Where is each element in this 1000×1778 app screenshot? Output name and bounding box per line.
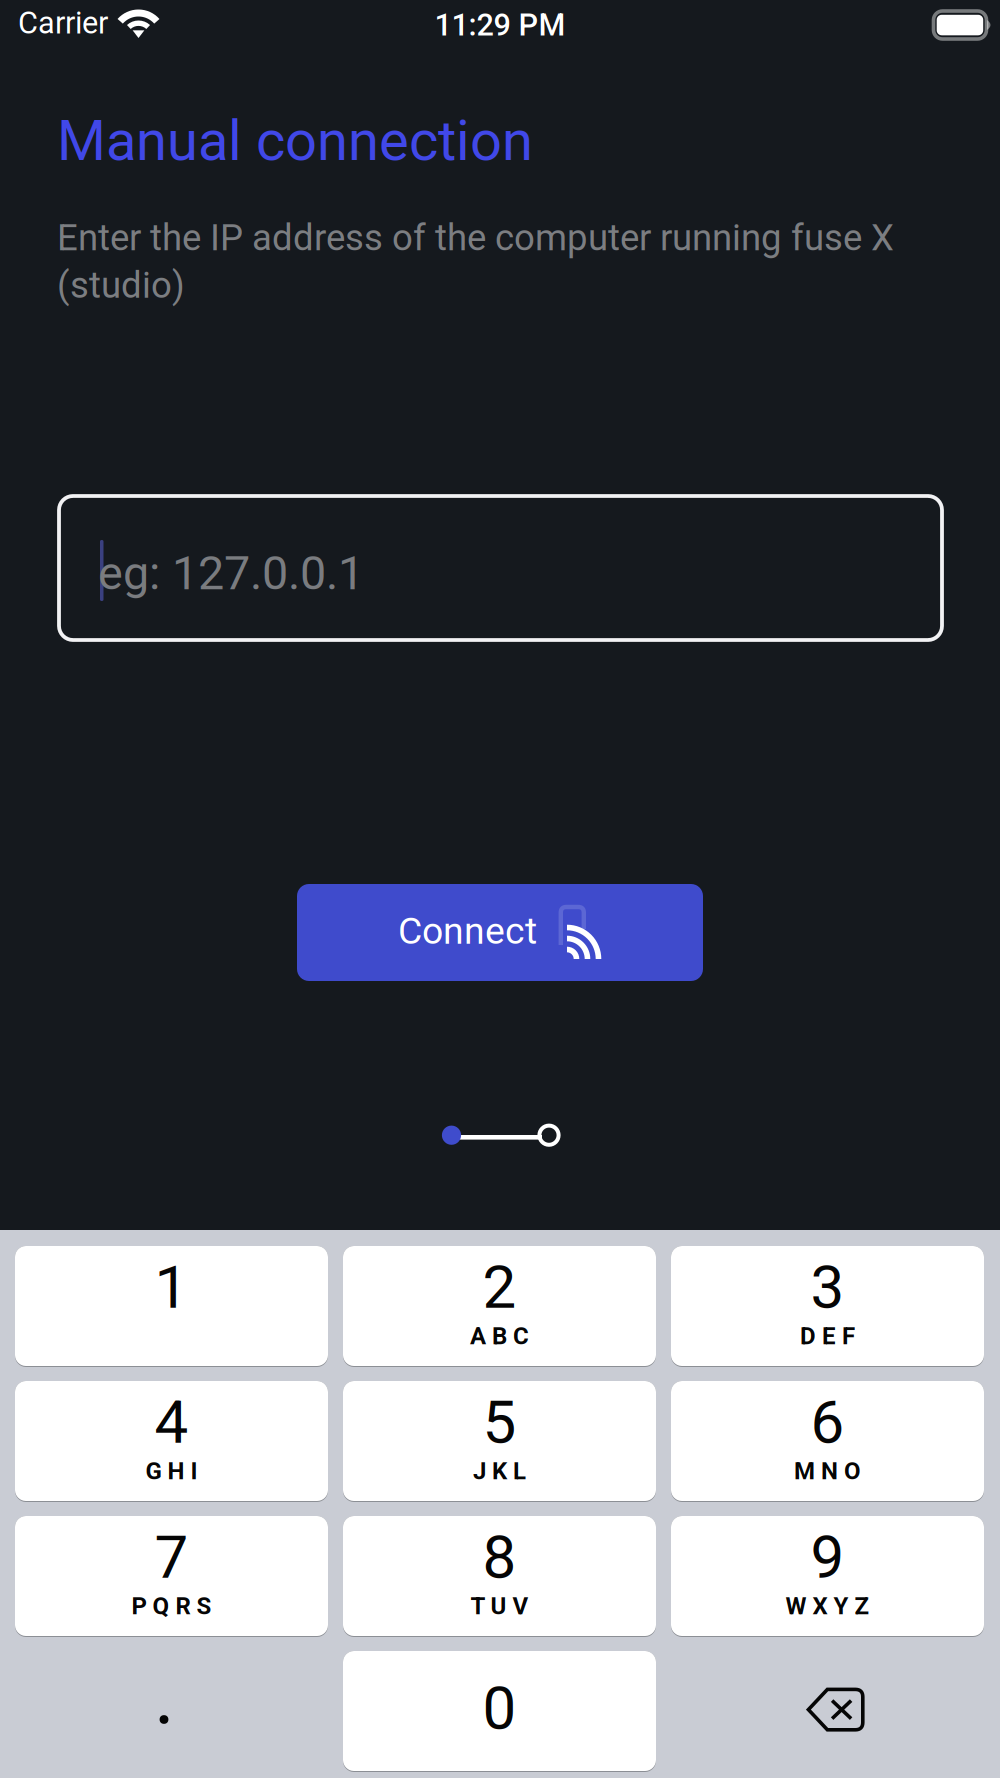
staticText: A B C [470, 1322, 529, 1350]
button[interactable]: Delete [671, 1651, 984, 1772]
button[interactable]: 8 [343, 1516, 656, 1637]
staticText: 8 [482, 1522, 516, 1592]
staticText: W X Y Z [785, 1592, 869, 1620]
staticText: P Q R S [131, 1592, 211, 1620]
staticText: 7 [154, 1522, 188, 1592]
staticText: D E F [800, 1322, 855, 1350]
button[interactable]: 9 [671, 1516, 984, 1637]
staticText: 3 [810, 1252, 844, 1322]
staticText: Manual connection [57, 108, 533, 174]
staticText: 11:29 PM [434, 7, 565, 43]
button[interactable]: Connect [297, 884, 703, 981]
staticText: 1 [154, 1252, 188, 1322]
staticText: J K L [473, 1457, 526, 1485]
staticText: 9 [810, 1522, 844, 1592]
button[interactable]: 6 [671, 1381, 984, 1502]
staticText: 2 [482, 1252, 516, 1322]
staticText: 6 [810, 1387, 844, 1457]
button[interactable]: 4 [15, 1381, 328, 1502]
staticText: Enter the IP address of the computer run… [57, 214, 894, 309]
button[interactable]: 7 [15, 1516, 328, 1637]
button[interactable]: 5 [343, 1381, 656, 1502]
staticText: 0 [482, 1673, 516, 1743]
staticText: Connect [398, 909, 537, 953]
staticText: 4 [154, 1387, 188, 1457]
button[interactable]: Decimal point [15, 1651, 328, 1772]
button[interactable]: 3 [671, 1246, 984, 1367]
button[interactable]: 1 [15, 1246, 328, 1367]
button[interactable]: 2 [343, 1246, 656, 1367]
staticText: M N O [794, 1457, 861, 1485]
button[interactable]: 0 [343, 1651, 656, 1772]
staticText: T U V [470, 1592, 528, 1620]
staticText: Carrier [18, 5, 108, 41]
staticText: eg: 127.0.0.1 [98, 546, 364, 601]
staticText: G H I [145, 1457, 197, 1485]
staticText: 5 [482, 1387, 516, 1457]
